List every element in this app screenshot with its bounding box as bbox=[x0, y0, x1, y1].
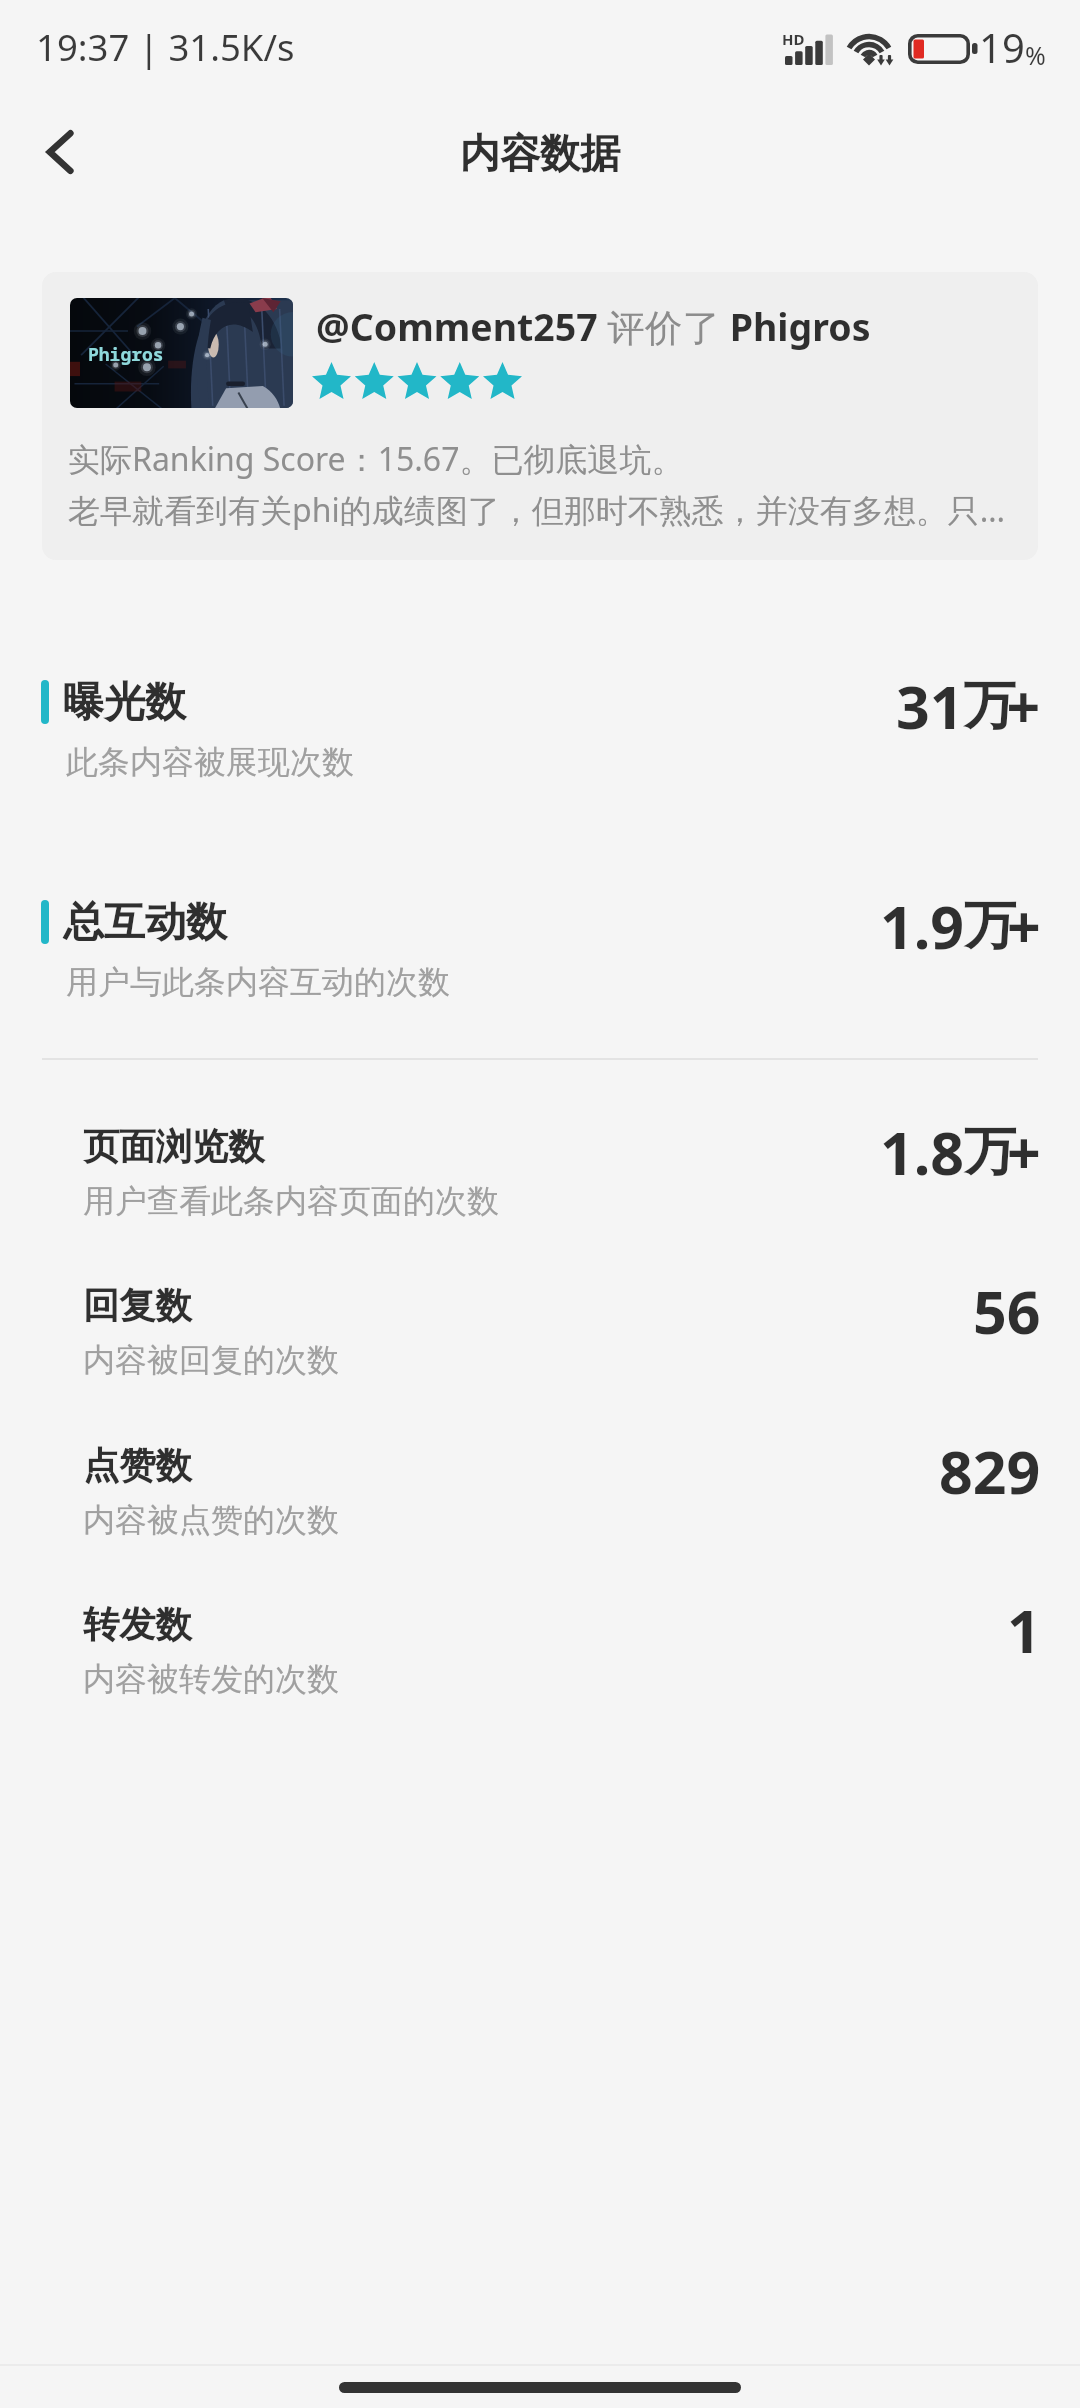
staticText: HD bbox=[782, 29, 805, 49]
staticText: 1 bbox=[1007, 1590, 1041, 1670]
staticText: 页面浏览数 bbox=[83, 1124, 265, 1170]
button[interactable]: 转发数 bbox=[0, 1602, 1080, 1742]
staticText: 内容被点赞的次数 bbox=[83, 1500, 339, 1540]
staticText: 19 bbox=[979, 20, 1025, 74]
staticText: 31万+ bbox=[896, 666, 1041, 746]
staticText: 转发数 bbox=[83, 1602, 192, 1648]
button[interactable]: 页面浏览数 bbox=[0, 1124, 1080, 1264]
staticText: Phigros bbox=[88, 342, 164, 367]
staticText: 1.8万+ bbox=[880, 1112, 1041, 1192]
staticText: 点赞数 bbox=[83, 1443, 192, 1489]
staticText: 829 bbox=[939, 1431, 1041, 1511]
staticText: 实际Ranking Score：15.67。已彻底退坑。 bbox=[68, 437, 684, 481]
staticText: % bbox=[1025, 38, 1046, 72]
staticText: 用户查看此条内容页面的次数 bbox=[83, 1181, 499, 1221]
staticText: 此条内容被展现次数 bbox=[66, 742, 354, 782]
staticText: 1.9万+ bbox=[880, 886, 1041, 966]
staticText: 回复数 bbox=[83, 1283, 192, 1329]
staticText: 总互动数 bbox=[63, 897, 227, 949]
button[interactable]: Back bbox=[12, 104, 112, 200]
button[interactable]: 曝光数 bbox=[0, 662, 1080, 794]
staticText: 老早就看到有关phi的成绩图了，但那时不熟悉，并没有多想。只… bbox=[68, 488, 1006, 532]
button[interactable]: 总互动数 bbox=[0, 882, 1080, 1014]
button[interactable]: Phigros bbox=[42, 272, 1038, 560]
staticText: @Comment257 评价了 Phigros bbox=[316, 301, 871, 352]
staticText: 内容数据 bbox=[460, 128, 620, 178]
staticText: 曝光数 bbox=[63, 677, 186, 729]
staticText: 内容被回复的次数 bbox=[83, 1340, 339, 1380]
staticText: 19:37 | 31.5K/s bbox=[36, 22, 295, 72]
staticText: 用户与此条内容互动的次数 bbox=[66, 962, 450, 1002]
staticText: 56 bbox=[973, 1271, 1041, 1351]
button[interactable]: 回复数 bbox=[0, 1283, 1080, 1423]
staticText: 内容被转发的次数 bbox=[83, 1659, 339, 1699]
button[interactable]: 点赞数 bbox=[0, 1443, 1080, 1583]
